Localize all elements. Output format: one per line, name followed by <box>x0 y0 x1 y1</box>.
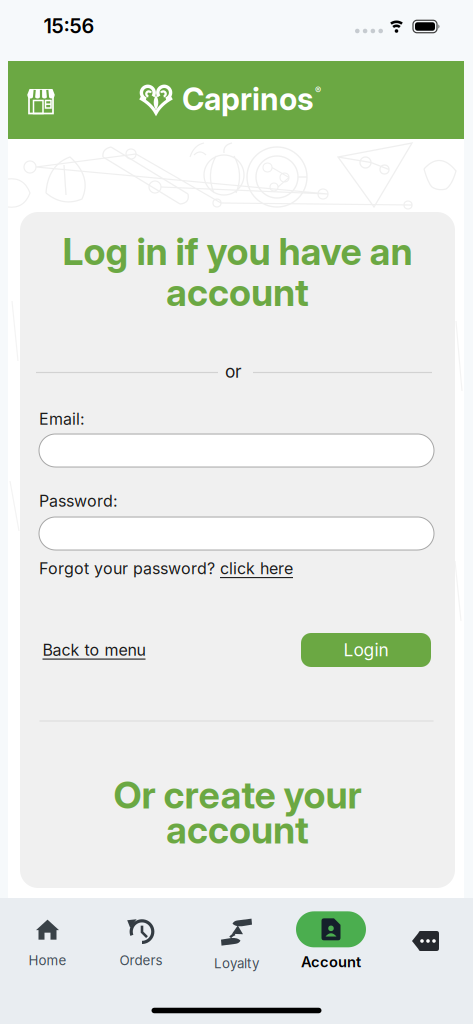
staticText: Home <box>28 953 66 968</box>
staticText: 15:56 <box>43 14 94 38</box>
staticText: Password: <box>39 492 118 510</box>
button[interactable]: Home <box>28 920 66 968</box>
button[interactable]: Chat <box>412 931 439 951</box>
button[interactable]: Back to menu <box>42 641 145 659</box>
staticText: Email: <box>39 410 85 428</box>
button[interactable]: Email <box>39 434 434 467</box>
staticText: Login <box>343 640 388 660</box>
staticText: or <box>225 361 242 382</box>
staticText: Or create your <box>113 773 361 817</box>
staticText: Back to menu <box>42 641 145 659</box>
staticText: account <box>166 808 309 852</box>
button[interactable]: Orders <box>119 918 162 968</box>
button[interactable]: Store <box>19 79 63 123</box>
staticText: Forgot your password? <box>39 559 215 578</box>
staticText: Loyalty <box>214 956 259 971</box>
button[interactable]: Password <box>39 517 434 550</box>
button[interactable]: Login <box>301 633 431 667</box>
staticText: ® <box>315 84 321 95</box>
button[interactable]: Account <box>296 911 366 971</box>
staticText: Orders <box>119 953 162 968</box>
staticText: click here <box>220 559 293 578</box>
staticText: Log in if you have an <box>62 229 412 273</box>
button[interactable]: click here <box>220 559 293 578</box>
staticText: Account <box>301 953 361 971</box>
button[interactable]: Loyalty <box>214 919 259 971</box>
staticText: Caprinos <box>182 81 314 117</box>
staticText: account <box>166 270 309 314</box>
